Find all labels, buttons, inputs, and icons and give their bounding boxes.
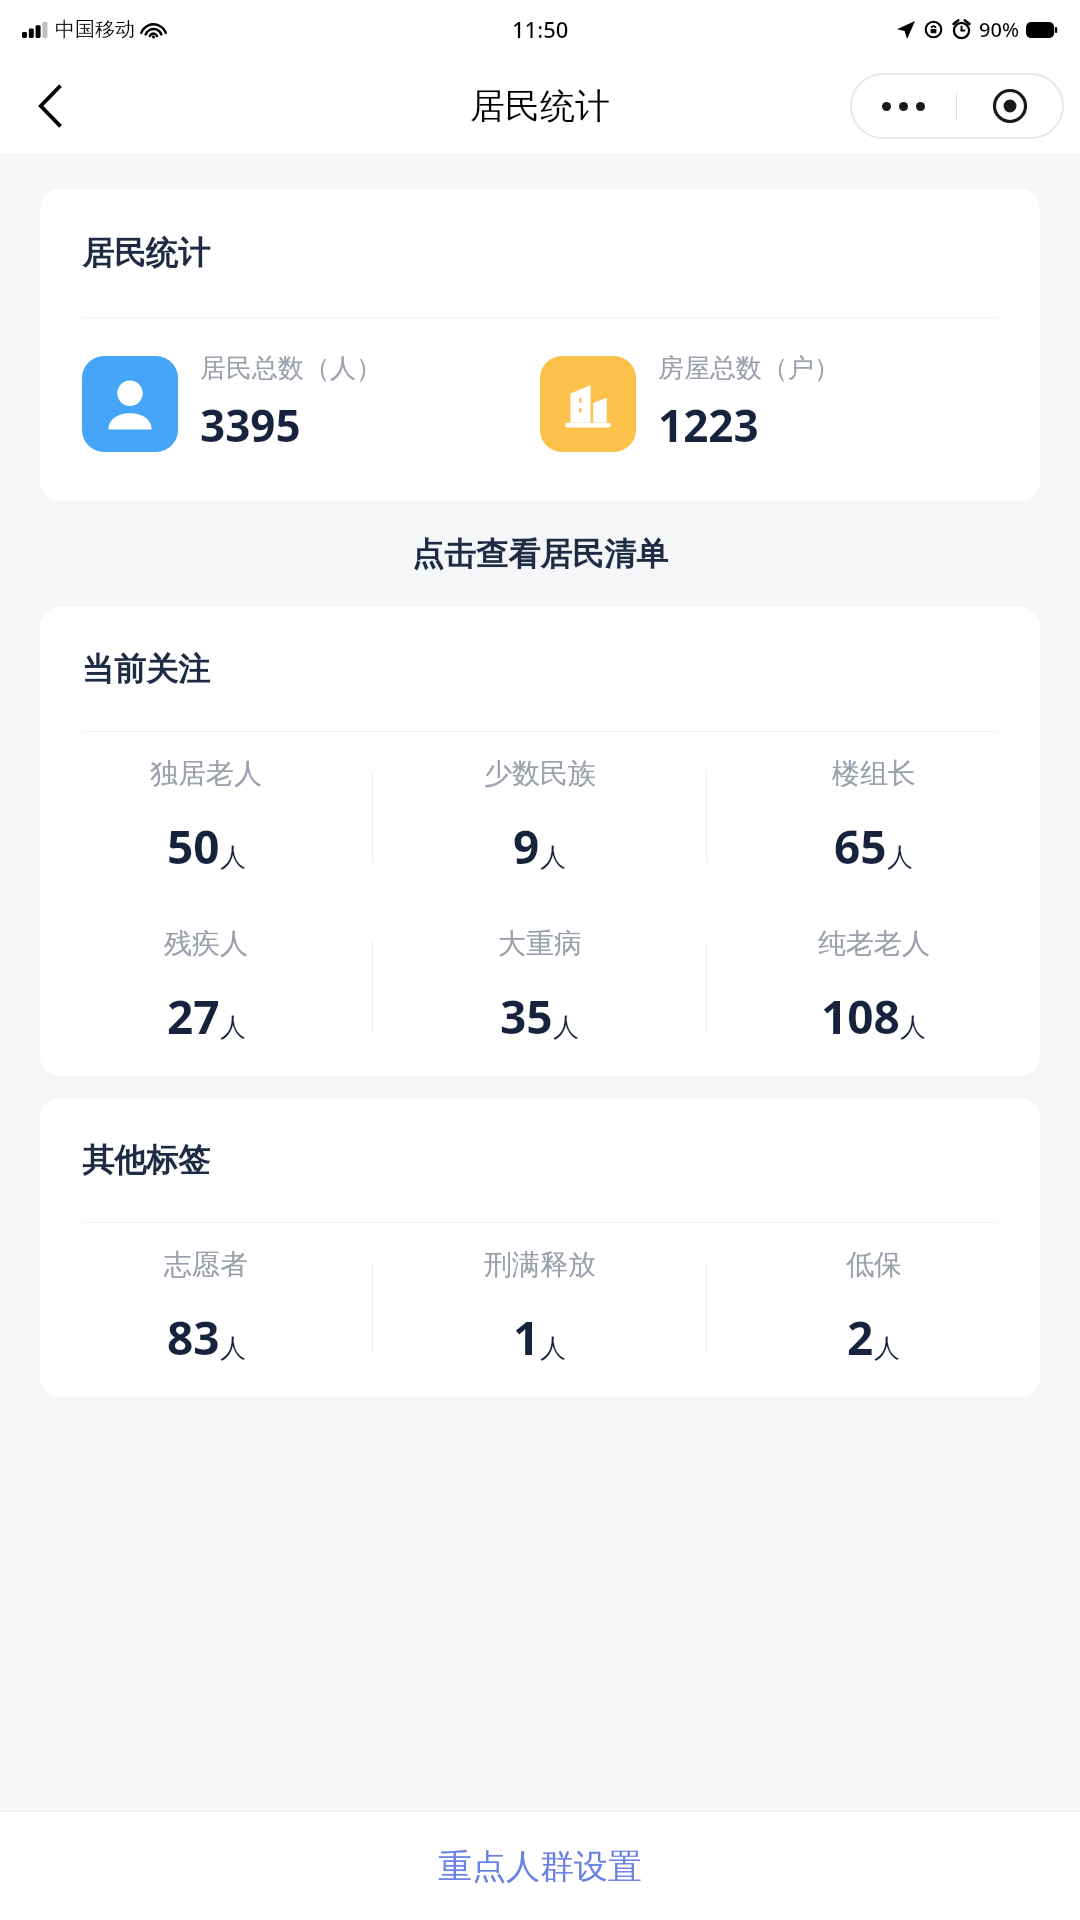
- button[interactable]: 志愿者: [40, 1223, 372, 1393]
- staticText: 90%: [979, 16, 1019, 43]
- button[interactable]: Back: [18, 74, 82, 138]
- staticText: 2: [847, 1306, 874, 1369]
- staticText: 残疾人: [164, 926, 248, 961]
- staticText: 83: [167, 1306, 220, 1369]
- staticText: 人: [220, 841, 246, 874]
- button[interactable]: 少数民族: [373, 732, 706, 902]
- staticText: 人: [220, 1011, 246, 1044]
- staticText: 少数民族: [484, 756, 596, 791]
- button[interactable]: 低保: [707, 1223, 1040, 1393]
- staticText: 纯老老人: [818, 926, 930, 961]
- staticText: 108: [821, 985, 900, 1048]
- staticText: 人: [900, 1011, 926, 1044]
- staticText: 人: [540, 841, 566, 874]
- staticText: 当前关注: [82, 649, 210, 689]
- staticText: 35: [500, 985, 553, 1048]
- button[interactable]: Close: [957, 74, 1063, 138]
- staticText: 点击查看居民清单: [412, 534, 668, 574]
- staticText: 9: [513, 815, 540, 878]
- button[interactable]: 重点人群设置: [0, 1812, 1080, 1920]
- staticText: 房屋总数（户）: [658, 352, 840, 385]
- button[interactable]: 刑满释放: [373, 1223, 706, 1393]
- staticText: 楼组长: [832, 756, 916, 791]
- staticText: 刑满释放: [484, 1247, 596, 1282]
- staticText: 其他标签: [82, 1140, 210, 1180]
- button[interactable]: 居民统计: [40, 189, 1040, 501]
- button[interactable]: 独居老人: [40, 732, 372, 902]
- staticText: 人: [540, 1332, 566, 1365]
- staticText: 人: [874, 1332, 900, 1365]
- staticText: 50: [167, 815, 220, 878]
- staticText: 独居老人: [150, 756, 262, 791]
- staticText: 志愿者: [164, 1247, 248, 1282]
- staticText: 11:50: [512, 14, 569, 44]
- staticText: 重点人群设置: [438, 1845, 642, 1888]
- staticText: 1: [513, 1306, 540, 1369]
- staticText: 低保: [846, 1247, 902, 1282]
- staticText: 1223: [658, 395, 759, 455]
- staticText: 大重病: [498, 926, 582, 961]
- staticText: 居民总数（人）: [200, 352, 382, 385]
- staticText: 65: [834, 815, 887, 878]
- button[interactable]: 纯老老人: [707, 902, 1040, 1072]
- button[interactable]: 楼组长: [707, 732, 1040, 902]
- staticText: 居民统计: [470, 84, 610, 128]
- staticText: 人: [553, 1011, 579, 1044]
- button[interactable]: 残疾人: [40, 902, 372, 1072]
- button[interactable]: 点击查看居民清单: [0, 534, 1080, 574]
- staticText: 27: [167, 985, 220, 1048]
- button[interactable]: More: [851, 74, 956, 138]
- staticText: 中国移动: [55, 17, 135, 42]
- staticText: 人: [887, 841, 913, 874]
- staticText: 3395: [200, 395, 301, 455]
- staticText: 人: [220, 1332, 246, 1365]
- staticText: 居民统计: [82, 233, 210, 273]
- button[interactable]: 大重病: [373, 902, 706, 1072]
